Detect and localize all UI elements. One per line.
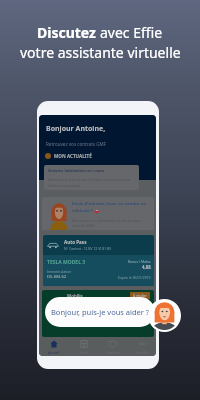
staticText: votre assistante virtuelle [20, 43, 181, 62]
button[interactable]: Sinistre habitation en cours [44, 165, 139, 190]
button[interactable]: Mobilis [42, 290, 154, 337]
button[interactable]: Accueil [39, 338, 69, 356]
staticText: TESLA MODEL 3 [47, 259, 86, 266]
staticText: DS-KM-62 [47, 274, 67, 280]
staticText: Envie d'acheter, louer ou vendre un véhi… [72, 200, 148, 213]
staticText: MON ACTUALITÉ [54, 153, 92, 159]
staticText: Bonjour Antoine, [46, 124, 106, 134]
staticText: Accueil [48, 350, 60, 355]
button[interactable]: Auto Pass [43, 235, 154, 286]
staticText: Découvrez nos partenaires et nos service… [72, 218, 148, 228]
button[interactable]: Envie d'acheter, louer ou vendre un véhi… [42, 197, 154, 230]
staticText: À résilier [133, 293, 147, 298]
staticText: Auto Pass [64, 239, 87, 245]
button[interactable]: Bonjour, puis-je vous aider ? [45, 297, 155, 327]
staticText: avec Effie [100, 23, 163, 42]
staticText: Discutez [37, 23, 100, 42]
staticText: N° Contrat : 12 BV 12 VI 81 BS [64, 246, 112, 251]
button[interactable]: Voir plus [127, 338, 156, 356]
staticText: Retrouvez vos contrats GMF [46, 141, 107, 147]
button[interactable]: Assistante virtuelle Effie [148, 299, 181, 332]
staticText: Bonus / Malus [128, 259, 151, 264]
staticText: 4,88 [142, 264, 151, 270]
staticText: Retrouvez le suivi de votre Sinistre con… [48, 177, 136, 188]
staticText: Sinistre habitation en cours [48, 168, 105, 174]
staticText: Expire le 30/01/2019 [118, 275, 151, 280]
staticText: Bonjour, puis-je vous aider ? [51, 307, 150, 317]
staticText: Mobilis [67, 293, 83, 299]
staticText: Immatriculation [47, 270, 72, 274]
button[interactable]: Devis [69, 338, 98, 356]
